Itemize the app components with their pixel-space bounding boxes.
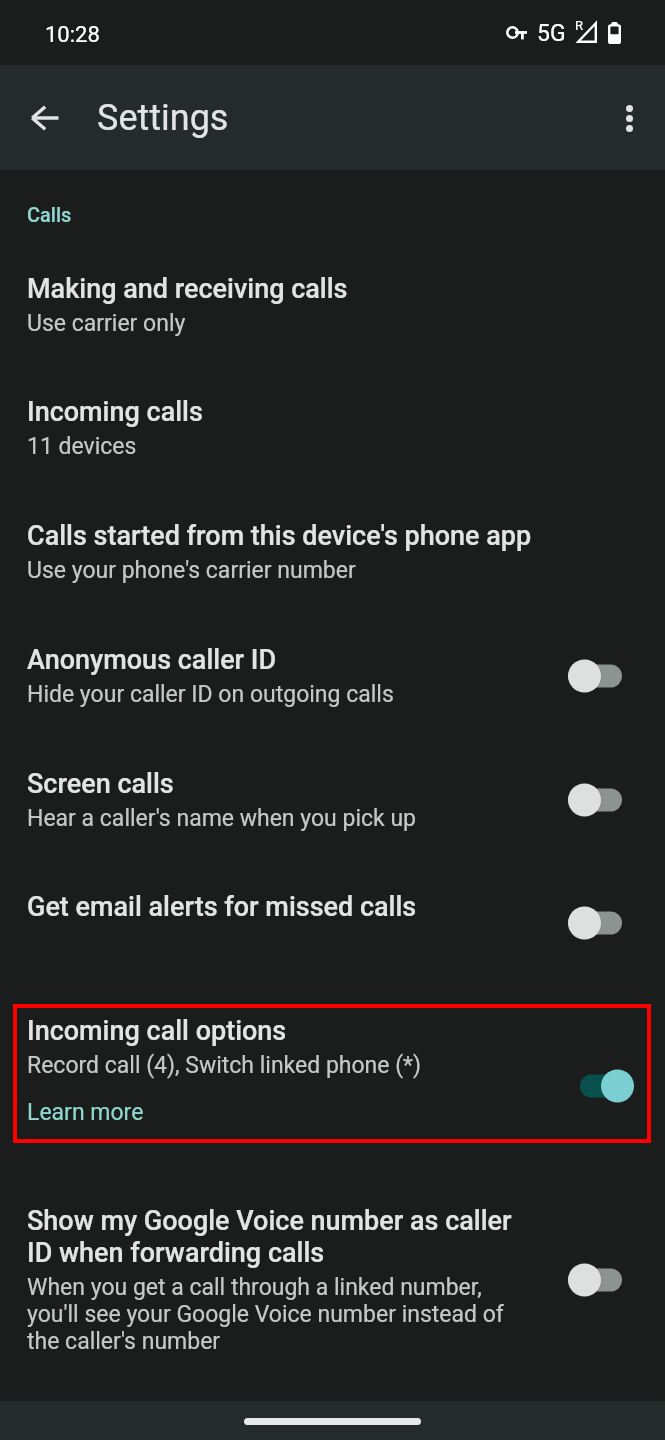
button[interactable]: Incoming calls: [0, 366, 665, 490]
button[interactable]: Show my Google Voice number as caller ID…: [0, 1175, 665, 1375]
staticText: Incoming call options: [27, 1015, 287, 1047]
staticText: Use your phone's carrier number: [27, 557, 356, 584]
staticText: R: [575, 18, 584, 33]
staticText: Use carrier only: [27, 310, 186, 337]
button[interactable]: Get email alerts for missed calls: [0, 861, 665, 985]
staticText: Screen calls: [27, 768, 174, 800]
button[interactable]: Learn more: [27, 1099, 144, 1126]
button[interactable]: Screen calls: [0, 738, 665, 861]
staticText: Calls started from this device's phone a…: [27, 520, 532, 552]
button[interactable]: Anonymous caller ID: [0, 614, 665, 738]
button[interactable]: Turn on: [568, 1256, 638, 1304]
staticText: Hear a caller's name when you pick up: [27, 805, 416, 832]
button[interactable]: Back: [18, 91, 72, 145]
button[interactable]: Incoming call options: [0, 1004, 665, 1143]
staticText: Get email alerts for missed calls: [27, 891, 417, 923]
staticText: Show my Google Voice number as caller ID…: [27, 1205, 527, 1269]
staticText: 5G: [537, 20, 566, 47]
button[interactable]: Making and receiving calls: [0, 243, 665, 366]
staticText: 11 devices: [27, 433, 137, 460]
staticText: Anonymous caller ID: [27, 644, 277, 676]
staticText: Calls: [27, 203, 72, 226]
staticText: Record call (4), Switch linked phone (*): [27, 1052, 422, 1079]
staticText: When you get a call through a linked num…: [27, 1274, 519, 1355]
button[interactable]: Turn on: [568, 776, 638, 824]
staticText: Settings: [97, 97, 229, 139]
button[interactable]: Turn off: [580, 1062, 650, 1110]
staticText: 10:28: [45, 22, 100, 48]
button[interactable]: Calls started from this device's phone a…: [0, 490, 665, 614]
button[interactable]: Turn on: [568, 899, 638, 947]
staticText: Making and receiving calls: [27, 273, 348, 305]
button[interactable]: More options: [602, 91, 656, 145]
staticText: Hide your caller ID on outgoing calls: [27, 681, 394, 708]
staticText: Incoming calls: [27, 396, 203, 428]
button[interactable]: Turn on: [568, 652, 638, 700]
